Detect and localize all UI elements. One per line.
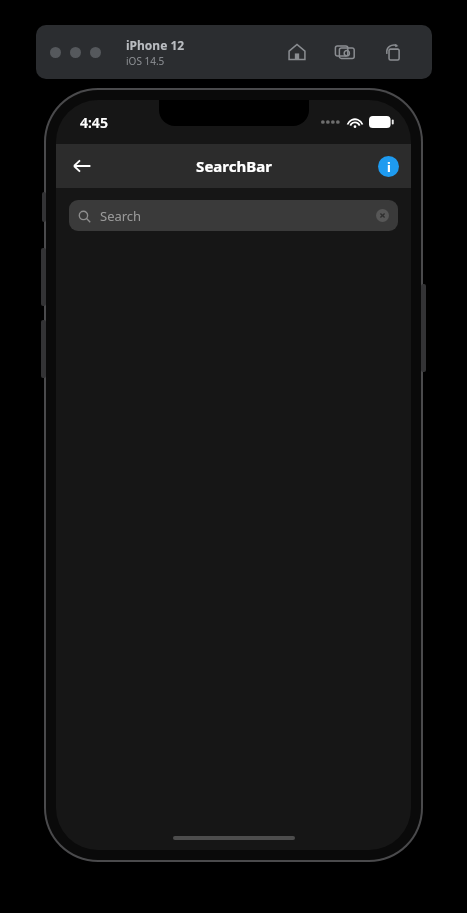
button[interactable] [50, 47, 61, 58]
staticText: SearchBar [196, 156, 272, 176]
button[interactable]: Back [62, 146, 102, 186]
button[interactable]: Screenshot [328, 35, 362, 69]
button[interactable] [90, 47, 101, 58]
button[interactable]: Info [378, 156, 399, 177]
button[interactable]: Volume up [41, 248, 46, 306]
staticText: Search [100, 207, 142, 225]
staticText: iOS 14.5 [126, 54, 165, 68]
staticText: 4:45 [80, 113, 108, 132]
button[interactable]: Rotate [376, 35, 410, 69]
button[interactable]: Volume down [41, 320, 46, 378]
button[interactable]: Search [69, 200, 398, 231]
staticText: iPhone 12 [126, 37, 185, 53]
staticText: i [387, 158, 391, 176]
button[interactable]: Clear search [376, 209, 389, 222]
button[interactable]: Silent switch [42, 192, 46, 222]
button[interactable]: Home [280, 35, 314, 69]
button[interactable] [70, 47, 81, 58]
